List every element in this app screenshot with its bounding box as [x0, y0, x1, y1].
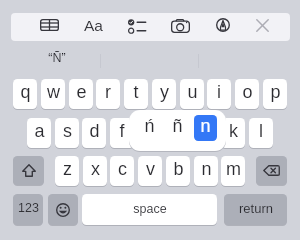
staticText: f: [119, 121, 125, 141]
button[interactable]: r: [96, 79, 120, 109]
button[interactable]: b: [166, 156, 190, 186]
button[interactable]: d: [82, 118, 106, 148]
staticText: space: [133, 202, 167, 216]
staticText: s: [63, 121, 72, 141]
button[interactable]: Insert table: [36, 12, 62, 38]
button[interactable]: n: [194, 115, 217, 141]
staticText: t: [133, 82, 139, 102]
staticText: r: [105, 82, 111, 102]
button[interactable]: v: [138, 156, 162, 186]
staticText: x: [91, 159, 100, 179]
button[interactable]: Aa: [80, 12, 106, 38]
staticText: y: [160, 82, 169, 102]
button[interactable]: s: [55, 118, 79, 148]
staticText: return: [239, 201, 273, 216]
button[interactable]: a: [27, 118, 51, 148]
staticText: g: [145, 121, 156, 141]
button[interactable]: Backspace: [256, 156, 287, 185]
staticText: 123: [18, 201, 39, 215]
button[interactable]: Checklist: [124, 13, 150, 39]
button[interactable]: y: [152, 79, 176, 109]
staticText: o: [242, 82, 253, 102]
staticText: u: [187, 82, 198, 102]
button[interactable]: space: [82, 194, 217, 225]
staticText: Aa: [84, 17, 103, 34]
staticText: a: [34, 121, 45, 141]
button[interactable]: 123: [13, 194, 43, 225]
button[interactable]: Close: [249, 12, 275, 38]
button[interactable]: [129, 110, 226, 151]
button[interactable]: o: [235, 79, 259, 109]
button[interactable]: i: [207, 79, 231, 109]
staticText: n: [201, 159, 212, 179]
button[interactable]: h: [166, 118, 190, 148]
button[interactable]: return: [224, 194, 287, 225]
button[interactable]: f: [110, 118, 134, 148]
staticText: q: [20, 82, 31, 102]
staticText: d: [89, 121, 100, 141]
button[interactable]: [11, 13, 290, 41]
staticText: w: [47, 82, 60, 102]
staticText: ń: [144, 116, 155, 136]
staticText: m: [226, 159, 241, 179]
button[interactable]: p: [263, 79, 287, 109]
button[interactable]: x: [83, 156, 107, 186]
staticText: c: [118, 159, 127, 179]
button[interactable]: Markup: [210, 12, 236, 38]
staticText: h: [173, 121, 184, 141]
staticText: j: [203, 121, 207, 141]
button[interactable]: c: [110, 156, 134, 186]
button[interactable]: t: [124, 79, 148, 109]
button[interactable]: e: [69, 79, 93, 109]
button[interactable]: g: [138, 118, 162, 148]
staticText: n: [200, 116, 211, 136]
staticText: v: [146, 159, 155, 179]
staticText: ñ: [172, 116, 183, 136]
button[interactable]: Camera: [167, 13, 193, 39]
staticText: i: [217, 82, 221, 102]
button[interactable]: k: [221, 118, 245, 148]
button[interactable]: z: [55, 156, 79, 186]
staticText: k: [229, 121, 238, 141]
button[interactable]: u: [180, 79, 204, 109]
button[interactable]: w: [41, 79, 65, 109]
staticText: l: [259, 121, 263, 141]
button[interactable]: l: [249, 118, 273, 148]
button[interactable]: q: [13, 79, 37, 109]
button[interactable]: ñ: [163, 115, 191, 141]
staticText: z: [63, 159, 72, 179]
button[interactable]: Emoji: [48, 194, 78, 225]
staticText: p: [270, 82, 281, 102]
button[interactable]: n: [194, 156, 218, 186]
staticText: b: [173, 159, 184, 179]
button[interactable]: “Ñ”: [17, 46, 97, 70]
button[interactable]: ń: [135, 115, 163, 141]
button[interactable]: j: [193, 118, 217, 148]
staticText: “Ñ”: [48, 51, 66, 65]
staticText: e: [76, 82, 87, 102]
button[interactable]: m: [221, 156, 245, 186]
button[interactable]: Shift: [13, 156, 44, 185]
